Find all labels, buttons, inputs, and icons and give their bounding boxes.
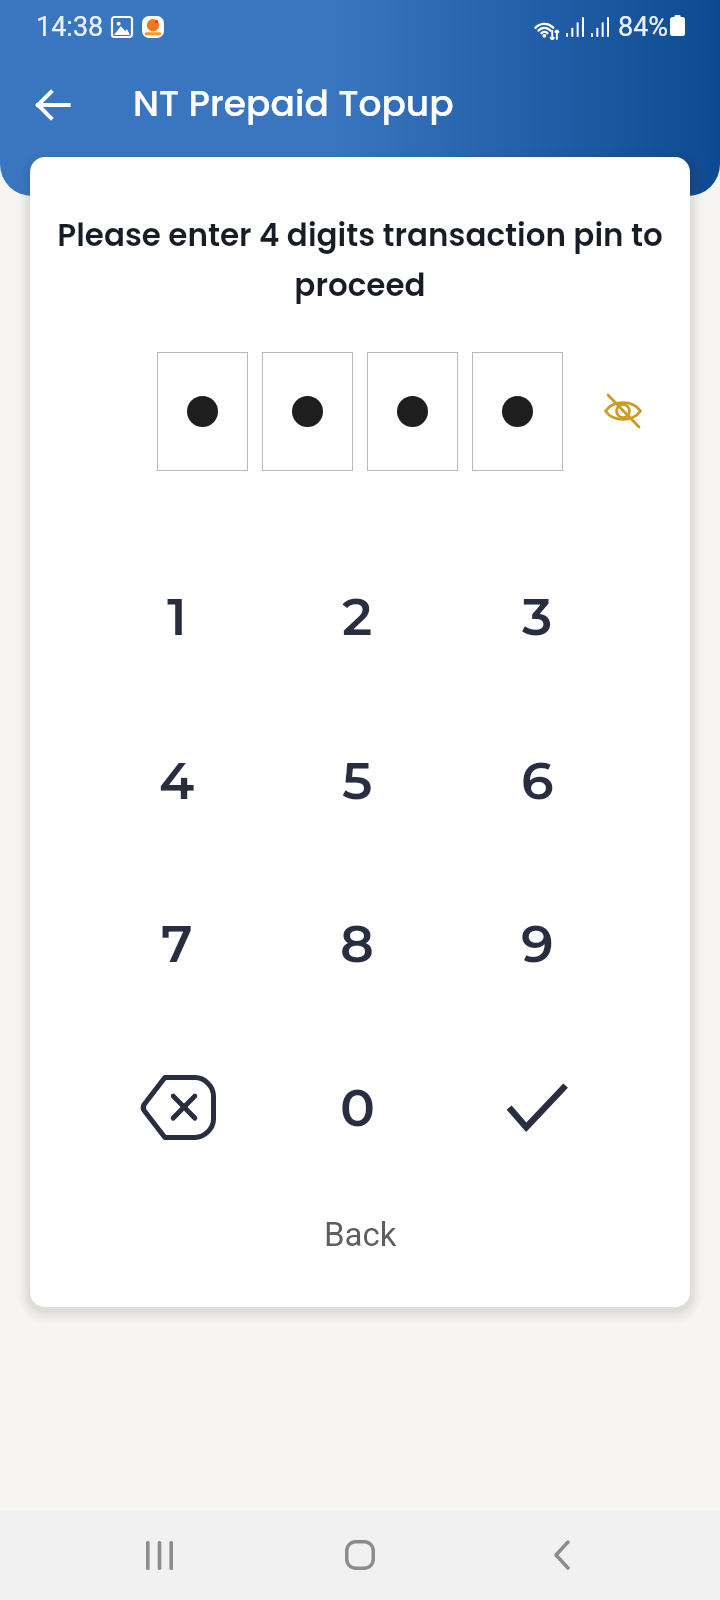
staticText: 5 <box>342 749 373 812</box>
staticText: 8 <box>340 912 374 975</box>
button[interactable]: Confirm <box>447 1026 627 1189</box>
button[interactable]: Home <box>317 1512 403 1598</box>
button[interactable] <box>367 352 458 471</box>
staticText: 4 <box>159 749 195 812</box>
button[interactable]: Delete <box>87 1026 267 1189</box>
button[interactable]: Back <box>519 1512 605 1598</box>
staticText: Back <box>324 1215 397 1254</box>
button[interactable]: 4 <box>87 699 267 862</box>
staticText: 7 <box>161 912 193 975</box>
button[interactable]: 2 <box>267 535 447 698</box>
button[interactable] <box>262 352 353 471</box>
button[interactable]: Back <box>280 1196 440 1272</box>
button[interactable]: 6 <box>447 699 627 862</box>
button[interactable]: Navigate back <box>20 72 86 138</box>
staticText: Please enter 4 digits transaction pin to… <box>45 213 675 307</box>
button[interactable]: 8 <box>267 862 447 1025</box>
button[interactable]: Show pin <box>591 379 655 443</box>
staticText: 9 <box>521 912 554 975</box>
button[interactable]: 1 <box>87 535 267 698</box>
button[interactable]: 3 <box>447 535 627 698</box>
button[interactable]: 5 <box>267 699 447 862</box>
staticText: 6 <box>521 749 554 812</box>
button[interactable] <box>472 352 563 471</box>
staticText: 14:38 <box>36 11 104 43</box>
staticText: 0 <box>340 1076 375 1139</box>
staticText: 3 <box>522 585 553 648</box>
staticText: 1 <box>167 585 187 648</box>
button[interactable] <box>157 352 248 471</box>
button[interactable]: Recent apps <box>116 1512 202 1598</box>
button[interactable]: 7 <box>87 862 267 1025</box>
staticText: 2 <box>342 585 373 648</box>
button[interactable]: 9 <box>447 862 627 1025</box>
staticText: NT Prepaid Topup <box>133 78 454 128</box>
staticText: 84% <box>618 11 669 43</box>
button[interactable]: 0 <box>267 1026 447 1189</box>
